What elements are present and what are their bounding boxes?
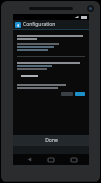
button[interactable]: Cancel (61, 92, 73, 96)
button[interactable] (17, 74, 85, 78)
button[interactable]: Done (13, 135, 89, 146)
button[interactable]: App icon (13, 20, 89, 29)
staticText: Configuration (23, 21, 56, 28)
button[interactable]: Select (75, 92, 85, 96)
button[interactable]: Recent apps (67, 154, 81, 165)
button[interactable]: Back (22, 154, 36, 165)
button[interactable]: Home (44, 154, 58, 165)
staticText: Done (45, 137, 58, 144)
other: App icon (15, 22, 21, 28)
